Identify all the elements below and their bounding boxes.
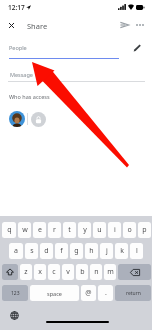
button[interactable]: @ <box>81 285 96 301</box>
staticText: y <box>83 225 87 235</box>
staticText: . <box>105 288 107 298</box>
button[interactable]: More options <box>133 18 147 32</box>
button[interactable]: m <box>104 264 116 280</box>
staticText: Who has access <box>9 93 50 100</box>
staticText: Message <box>10 71 33 78</box>
button[interactable]: n <box>90 264 102 280</box>
button[interactable]: z <box>20 264 32 280</box>
staticText: return <box>126 290 141 297</box>
staticText: w <box>22 225 28 235</box>
button[interactable]: c <box>48 264 60 280</box>
button[interactable]: return <box>115 285 151 301</box>
button[interactable]: space <box>30 285 79 301</box>
staticText: a <box>14 246 18 256</box>
button[interactable]: t <box>63 222 76 238</box>
staticText: Share <box>27 21 48 31</box>
button[interactable]: f <box>55 243 68 259</box>
button[interactable]: g <box>70 243 83 259</box>
staticText: z <box>24 267 28 277</box>
button[interactable]: p <box>138 222 151 238</box>
button[interactable]: Backspace <box>118 264 151 280</box>
staticText: v <box>66 267 70 277</box>
staticText: q <box>7 225 12 235</box>
button[interactable]: d <box>40 243 53 259</box>
staticText: 123 <box>11 290 20 297</box>
button[interactable]: 123 <box>2 285 28 301</box>
button[interactable]: Shift <box>2 264 18 280</box>
staticText: i <box>114 225 116 235</box>
button[interactable]: k <box>115 243 128 259</box>
staticText: d <box>44 246 49 256</box>
button[interactable]: y <box>78 222 91 238</box>
button[interactable]: r <box>48 222 61 238</box>
staticText: space <box>47 290 62 297</box>
staticText: o <box>127 225 132 235</box>
button[interactable]: x <box>34 264 46 280</box>
staticText: m <box>107 267 114 277</box>
button[interactable]: Edit <box>130 41 144 55</box>
button[interactable]: w <box>18 222 31 238</box>
button[interactable]: a <box>9 243 23 259</box>
button[interactable]: i <box>108 222 121 238</box>
staticText: u <box>97 225 102 235</box>
staticText: j <box>106 246 108 256</box>
button[interactable]: j <box>100 243 113 259</box>
button[interactable]: e <box>33 222 46 238</box>
staticText: k <box>120 246 124 256</box>
staticText: t <box>68 225 71 235</box>
button[interactable]: b <box>76 264 88 280</box>
staticText: e <box>38 225 42 235</box>
button[interactable]: h <box>85 243 98 259</box>
button[interactable]: Send <box>117 18 131 32</box>
staticText: l <box>136 246 138 256</box>
staticText: p <box>142 225 147 235</box>
staticText: x <box>38 267 42 277</box>
button[interactable]: Restricted access <box>31 112 46 127</box>
button[interactable]: Close <box>4 18 18 32</box>
staticText: b <box>80 267 85 277</box>
staticText: c <box>52 267 56 277</box>
button[interactable]: q <box>2 222 16 238</box>
staticText: @ <box>85 288 92 298</box>
button[interactable]: l <box>130 243 143 259</box>
staticText: 12:17 <box>8 3 25 12</box>
staticText: People <box>9 44 27 51</box>
staticText: s <box>30 246 34 256</box>
staticText: g <box>74 246 79 256</box>
staticText: h <box>89 246 94 256</box>
button[interactable]: s <box>25 243 38 259</box>
button[interactable]: Change keyboard <box>7 308 21 322</box>
button[interactable]: u <box>93 222 106 238</box>
staticText: r <box>53 225 56 235</box>
staticText: n <box>94 267 99 277</box>
staticText: f <box>60 246 63 256</box>
button[interactable]: o <box>123 222 136 238</box>
button[interactable]: . <box>98 285 113 301</box>
button[interactable]: v <box>62 264 74 280</box>
button[interactable]: Person with access <box>9 111 25 127</box>
